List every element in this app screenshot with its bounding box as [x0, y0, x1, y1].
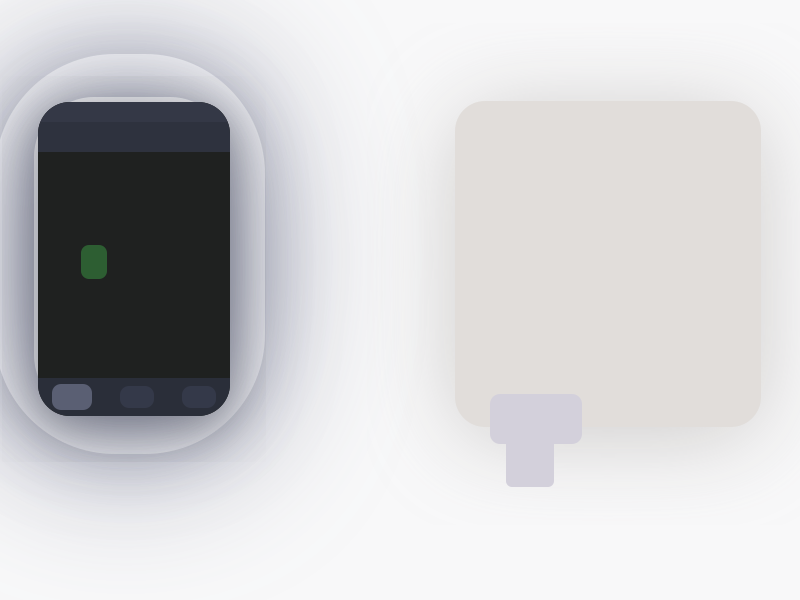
button[interactable]: Home tab [52, 384, 92, 410]
button[interactable]: Search tab [120, 386, 154, 408]
button[interactable]: Profile tab [182, 386, 216, 408]
button[interactable]: Status [81, 245, 107, 279]
